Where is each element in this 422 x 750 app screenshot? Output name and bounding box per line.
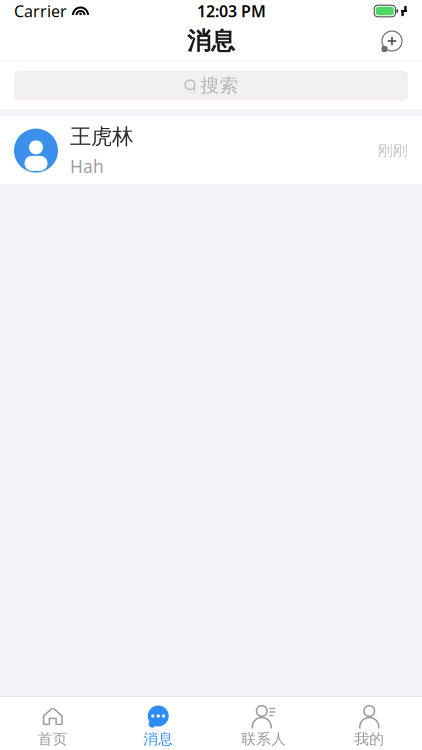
staticText: 王虎林	[70, 123, 133, 150]
staticText: 我的	[354, 730, 384, 748]
staticText: 联系人	[241, 730, 286, 748]
staticText: Hah	[70, 155, 104, 178]
staticText: 12:03 PM	[197, 0, 266, 22]
staticText: 消息	[143, 730, 173, 748]
staticText: 首页	[38, 730, 68, 748]
button[interactable]: 首页	[0, 697, 105, 750]
button[interactable]: 消息	[105, 697, 211, 750]
button[interactable]: 王虎林	[0, 117, 422, 185]
button[interactable]: 搜索	[14, 71, 408, 101]
staticText: Carrier	[14, 0, 67, 22]
button[interactable]: 联系人	[211, 697, 316, 750]
staticText: 消息	[187, 26, 235, 56]
staticText: 刚刚	[378, 142, 408, 160]
button[interactable]: 我的	[316, 697, 422, 750]
button[interactable]: New message	[370, 22, 414, 60]
staticText: 搜索	[200, 74, 238, 97]
